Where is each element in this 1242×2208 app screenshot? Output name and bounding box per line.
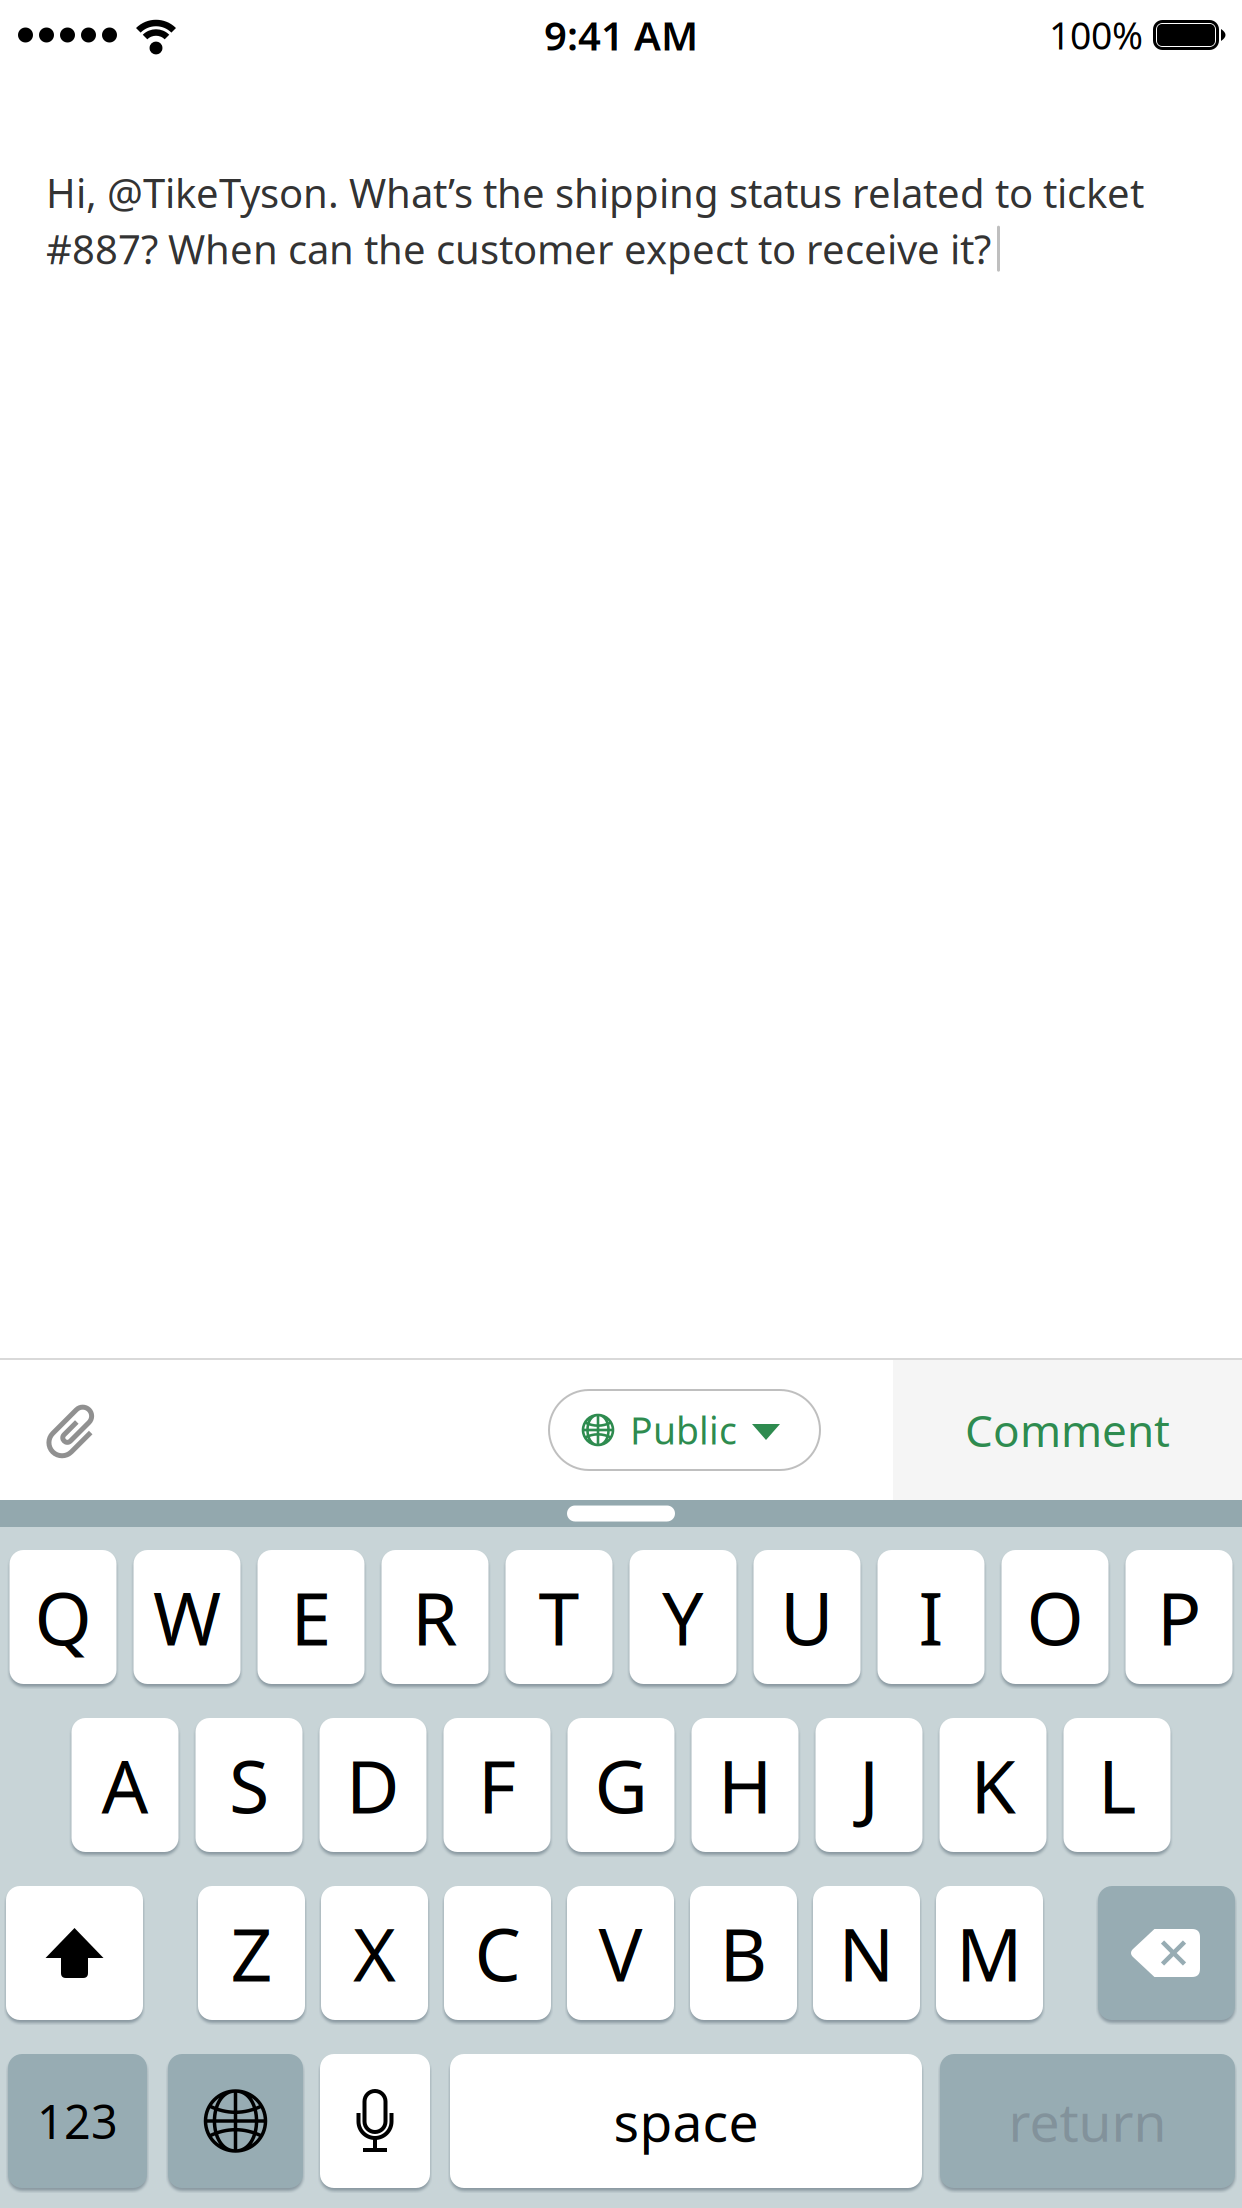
button[interactable]: M: [936, 1886, 1043, 2020]
staticText: R: [412, 1568, 458, 1666]
staticText: X: [353, 1904, 396, 2002]
staticText: Z: [230, 1904, 272, 2002]
button[interactable]: O: [1001, 1550, 1108, 1684]
button[interactable]: return: [940, 2054, 1235, 2188]
button[interactable]: Z: [198, 1886, 305, 2020]
staticText: V: [598, 1904, 642, 2002]
staticText: N: [838, 1904, 894, 2002]
button[interactable]: X: [321, 1886, 428, 2020]
button[interactable]: A: [71, 1718, 178, 1852]
button[interactable]: B: [690, 1886, 797, 2020]
button[interactable]: F: [443, 1718, 550, 1852]
button[interactable]: Attach file: [0, 1399, 104, 1461]
button[interactable]: Visibility: Public: [549, 1390, 820, 1470]
button[interactable]: C: [444, 1886, 551, 2020]
staticText: F: [478, 1736, 516, 1834]
staticText: 9:41 AM: [544, 8, 698, 61]
button[interactable]: N: [813, 1886, 920, 2020]
button[interactable]: Q: [9, 1550, 116, 1684]
button[interactable]: K: [939, 1718, 1046, 1852]
staticText: 100%: [1049, 10, 1143, 60]
button[interactable]: U: [753, 1550, 860, 1684]
staticText: Public: [630, 1405, 737, 1455]
button[interactable]: E: [257, 1550, 364, 1684]
button[interactable]: Shift: [6, 1886, 143, 2020]
staticText: L: [1098, 1736, 1136, 1834]
staticText: Q: [34, 1568, 91, 1666]
button[interactable]: Comment: [893, 1360, 1242, 1500]
button[interactable]: P: [1125, 1550, 1232, 1684]
staticText: I: [918, 1568, 943, 1666]
button[interactable]: Y: [629, 1550, 736, 1684]
button[interactable]: G: [567, 1718, 674, 1852]
button[interactable]: D: [319, 1718, 426, 1852]
staticText: S: [229, 1736, 269, 1834]
staticText: E: [290, 1568, 331, 1666]
staticText: W: [153, 1568, 221, 1666]
staticText: return: [1008, 2086, 1166, 2156]
staticText: O: [1026, 1568, 1083, 1666]
staticText: Comment: [965, 1401, 1170, 1459]
staticText: H: [718, 1736, 772, 1834]
staticText: 123: [37, 2090, 118, 2152]
staticText: A: [101, 1736, 148, 1834]
staticText: U: [780, 1568, 834, 1666]
staticText: M: [956, 1904, 1023, 2002]
staticText: D: [346, 1736, 400, 1834]
staticText: C: [474, 1904, 520, 2002]
button[interactable]: I: [877, 1550, 984, 1684]
button[interactable]: Dictate: [320, 2054, 430, 2188]
button[interactable]: T: [505, 1550, 612, 1684]
button[interactable]: R: [381, 1550, 488, 1684]
button[interactable]: W: [133, 1550, 240, 1684]
staticText: Y: [662, 1568, 704, 1666]
staticText: Hi, @TikeTyson. What’s the shipping stat…: [46, 166, 1144, 219]
staticText: space: [613, 2086, 758, 2156]
staticText: B: [719, 1904, 767, 2002]
staticText: G: [594, 1736, 647, 1834]
button[interactable]: Delete: [1098, 1886, 1235, 2020]
button[interactable]: space: [450, 2054, 922, 2188]
staticText: P: [1157, 1568, 1201, 1666]
staticText: #887? When can the customer expect to re…: [46, 222, 991, 275]
button[interactable]: H: [691, 1718, 798, 1852]
button[interactable]: 123: [8, 2054, 147, 2188]
button[interactable]: L: [1063, 1718, 1170, 1852]
staticText: J: [859, 1736, 879, 1834]
button[interactable]: V: [567, 1886, 674, 2020]
button[interactable]: S: [195, 1718, 302, 1852]
staticText: K: [970, 1736, 1015, 1834]
button[interactable]: Next keyboard: [168, 2054, 303, 2188]
staticText: T: [538, 1568, 579, 1666]
button[interactable]: J: [815, 1718, 922, 1852]
